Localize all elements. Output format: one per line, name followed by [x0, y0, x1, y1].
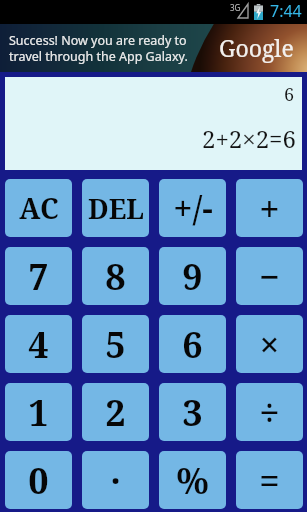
staticText: 6 — [182, 320, 203, 369]
staticText: 3 — [182, 388, 203, 437]
button[interactable]: Success! Now you are ready to travel thr… — [0, 24, 307, 72]
staticText: AC — [19, 189, 59, 227]
button[interactable]: AC — [5, 179, 72, 237]
staticText: 7 — [28, 252, 49, 301]
button[interactable]: 7 — [5, 247, 72, 305]
staticText: · — [110, 456, 121, 505]
button[interactable]: 1 — [5, 383, 72, 441]
button[interactable]: 4 — [5, 315, 72, 373]
button[interactable]: +/- — [159, 179, 226, 237]
button[interactable]: = — [236, 451, 303, 509]
staticText: 5 — [105, 320, 126, 369]
staticText: 3G — [230, 2, 241, 13]
staticText: 0 — [28, 456, 49, 505]
staticText: − — [259, 252, 280, 301]
button[interactable]: · — [82, 451, 149, 509]
staticText: 8 — [105, 252, 126, 301]
button[interactable]: 2 — [82, 383, 149, 441]
other: Battery charging — [254, 4, 263, 20]
staticText: 2+2×2=6 — [202, 122, 296, 155]
staticText: 6 — [284, 82, 295, 107]
button[interactable]: 3 — [159, 383, 226, 441]
button[interactable]: 5 — [82, 315, 149, 373]
button[interactable]: 0 — [5, 451, 72, 509]
staticText: 1 — [28, 388, 49, 437]
staticText: +/- — [173, 185, 213, 231]
staticText: 4 — [28, 320, 49, 369]
staticText: 2 — [105, 388, 126, 437]
button[interactable]: + — [236, 179, 303, 237]
button[interactable]: DEL — [82, 179, 149, 237]
button[interactable]: ÷ — [236, 383, 303, 441]
staticText: % — [176, 456, 209, 505]
button[interactable]: 9 — [159, 247, 226, 305]
button[interactable]: 8 — [82, 247, 149, 305]
staticText: DEL — [88, 190, 144, 227]
button[interactable]: − — [236, 247, 303, 305]
staticText: Google — [219, 32, 294, 63]
staticText: 9 — [182, 252, 203, 301]
staticText: ÷ — [259, 388, 280, 437]
button[interactable]: × — [236, 315, 303, 373]
staticText: Success! Now you are ready to travel thr… — [9, 32, 188, 64]
button[interactable]: 6 — [159, 315, 226, 373]
button[interactable]: % — [159, 451, 226, 509]
staticText: × — [259, 320, 280, 369]
staticText: = — [259, 456, 280, 505]
staticText: + — [259, 184, 280, 233]
staticText: 7:44 — [270, 0, 302, 22]
